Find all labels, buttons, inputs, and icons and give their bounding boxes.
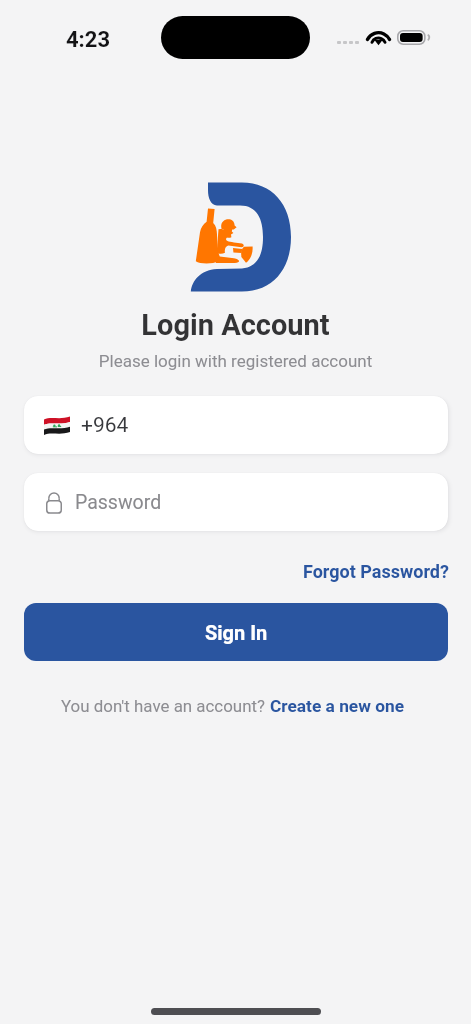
button[interactable]: Forgot Password? bbox=[303, 561, 449, 582]
staticText: Login Account bbox=[0, 308, 471, 342]
button[interactable]: Password bbox=[24, 473, 448, 531]
button[interactable]: Create a new one bbox=[270, 696, 405, 716]
other: Battery bbox=[397, 30, 429, 45]
staticText: Password bbox=[75, 491, 162, 514]
staticText: Please login with registered account bbox=[0, 351, 471, 371]
button[interactable]: +964 bbox=[24, 396, 448, 454]
staticText: Sign In bbox=[205, 621, 268, 644]
other: Wi-Fi bbox=[368, 30, 389, 45]
staticText: You don't have an account? bbox=[61, 696, 270, 716]
button[interactable]: Sign In bbox=[24, 603, 448, 661]
staticText: +964 bbox=[81, 413, 129, 438]
staticText: 4:23 bbox=[66, 27, 111, 53]
